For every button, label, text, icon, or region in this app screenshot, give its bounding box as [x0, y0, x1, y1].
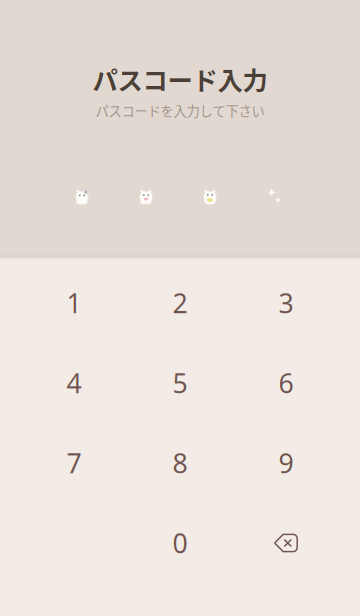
- button[interactable]: 0: [127, 503, 233, 583]
- staticText: 7: [66, 445, 81, 481]
- button[interactable]: 2: [127, 263, 233, 343]
- button[interactable]: 8: [127, 423, 233, 503]
- staticText: 8: [172, 445, 187, 481]
- staticText: 5: [172, 365, 187, 401]
- staticText: パスコード入力: [92, 61, 267, 97]
- staticText: 6: [278, 365, 293, 401]
- button[interactable]: 1: [21, 263, 127, 343]
- button[interactable]: 5: [127, 343, 233, 423]
- staticText: 4: [66, 365, 81, 401]
- staticText: 3: [278, 285, 293, 321]
- staticText: パスコードを入力して下さい: [95, 101, 264, 120]
- button[interactable]: 9: [233, 423, 339, 503]
- button[interactable]: 7: [21, 423, 127, 503]
- button[interactable]: 3: [233, 263, 339, 343]
- button[interactable]: 4: [21, 343, 127, 423]
- button[interactable]: Delete: [233, 503, 339, 583]
- staticText: 2: [172, 285, 187, 321]
- staticText: 9: [278, 445, 293, 481]
- staticText: 0: [172, 525, 187, 561]
- staticText: 1: [66, 285, 81, 321]
- button[interactable]: 6: [233, 343, 339, 423]
